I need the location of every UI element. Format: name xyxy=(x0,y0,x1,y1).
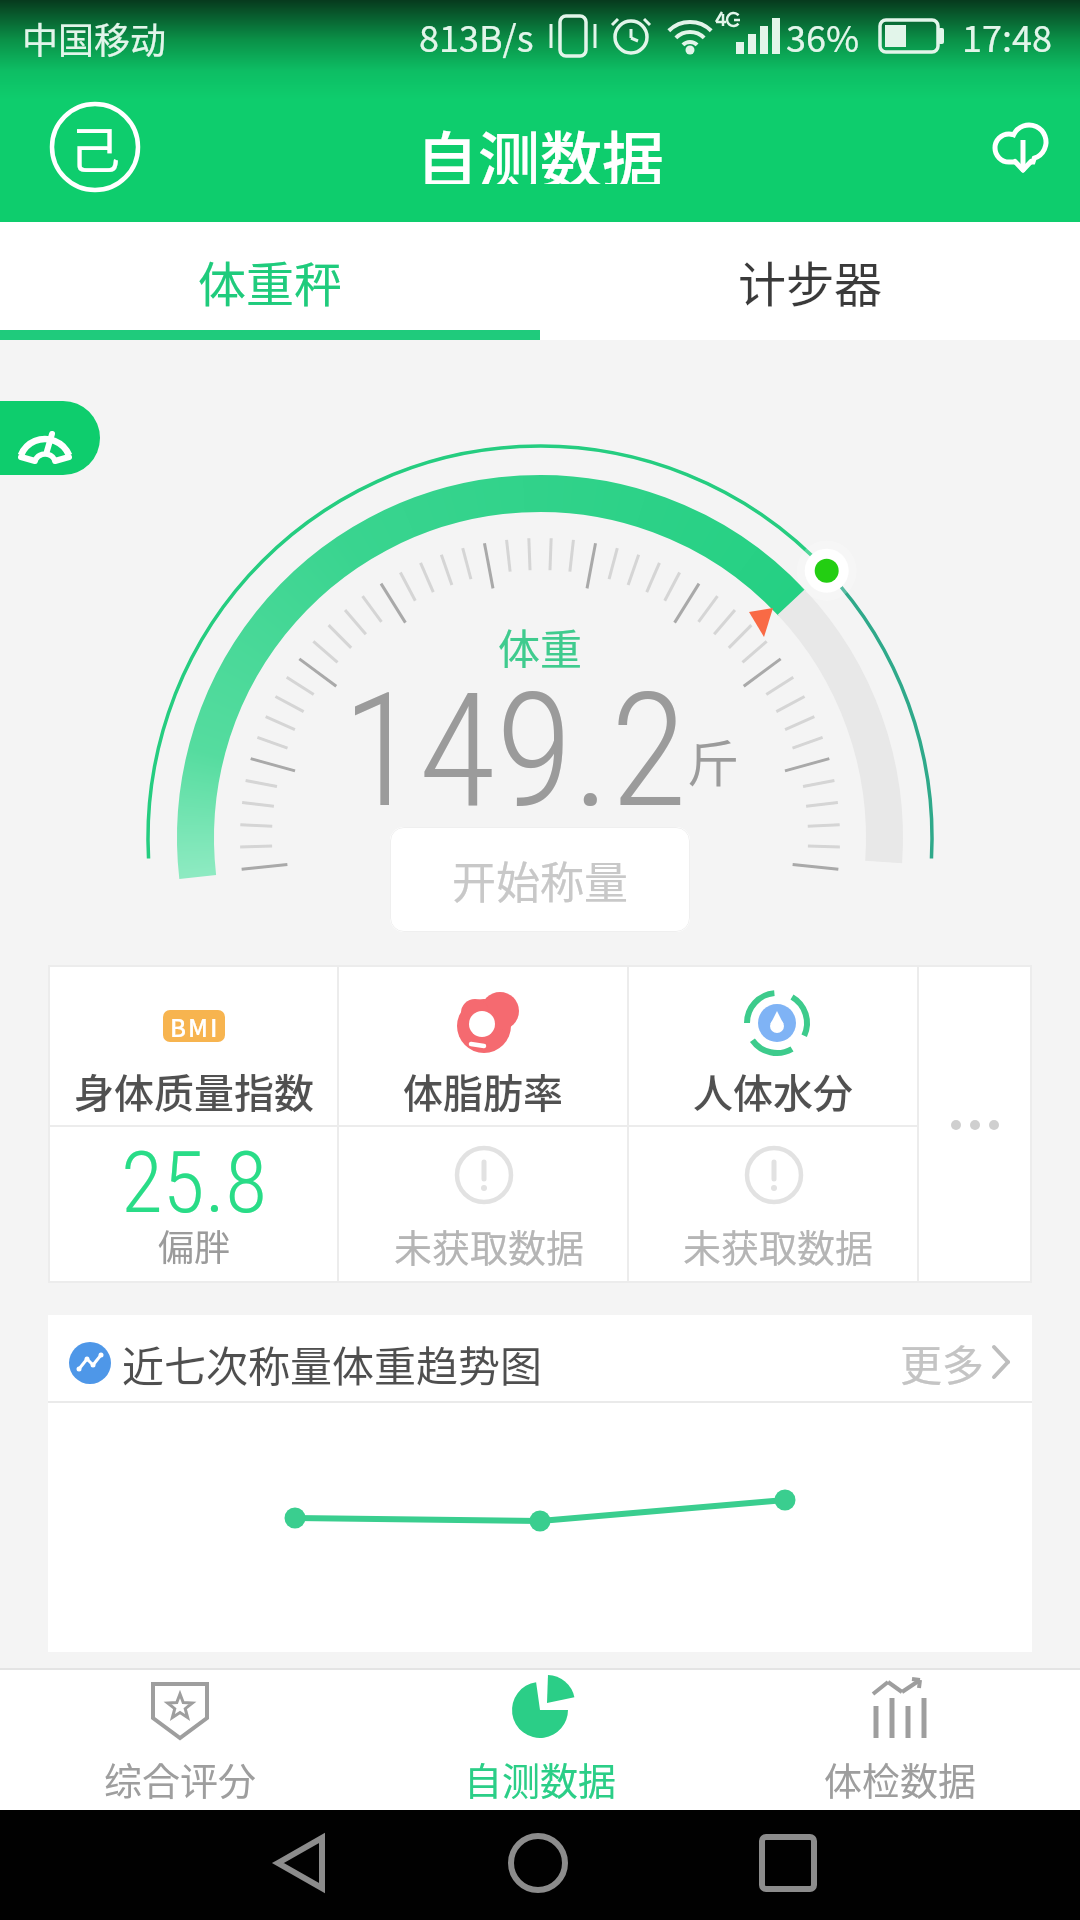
button[interactable] xyxy=(420,1668,660,1810)
staticText: 36% xyxy=(786,10,860,62)
button[interactable]: 计步器 xyxy=(540,222,1080,340)
staticText: 偏胖 xyxy=(158,1219,231,1271)
staticText: 自测数据 xyxy=(464,1751,617,1806)
staticText: 自测数据 xyxy=(416,112,665,184)
button[interactable] xyxy=(460,1810,620,1920)
button[interactable] xyxy=(240,1810,400,1920)
button[interactable] xyxy=(985,110,1057,182)
staticText: 综合评分 xyxy=(104,1751,257,1806)
staticText: 体重秤 xyxy=(198,246,343,316)
button[interactable]: 体重秤 xyxy=(0,222,540,340)
button[interactable] xyxy=(700,1810,860,1920)
staticText: 更多 xyxy=(900,1332,985,1393)
staticText: 25.8 xyxy=(121,1132,268,1222)
staticText: 未获取数据 xyxy=(683,1218,874,1273)
staticText: 未获取数据 xyxy=(394,1218,585,1273)
staticText: 人体水分 xyxy=(693,1062,853,1120)
staticText: BMI xyxy=(170,1009,220,1044)
staticText: 中国移动 xyxy=(22,12,167,64)
staticText: 813B/s xyxy=(419,10,534,62)
button[interactable]: 近七次称量体重趋势图 xyxy=(48,1315,1032,1652)
staticText: 近七次称量体重趋势图 xyxy=(122,1333,543,1394)
staticText: 己 xyxy=(70,111,120,183)
staticText: 斤 xyxy=(688,724,738,796)
button[interactable] xyxy=(60,1668,300,1810)
button[interactable] xyxy=(780,1668,1020,1810)
staticText: 体检数据 xyxy=(824,1751,977,1806)
staticText: 17:48 xyxy=(962,10,1052,62)
staticText: 身体质量指数 xyxy=(74,1062,314,1120)
staticText: 计步器 xyxy=(738,246,883,316)
staticText: 开始称量 xyxy=(452,848,628,912)
button[interactable]: 开始称量 xyxy=(390,827,690,932)
button[interactable]: 己 xyxy=(51,103,139,191)
staticText: 体重 xyxy=(498,616,583,668)
staticText: 149.2 xyxy=(342,658,688,818)
button[interactable] xyxy=(0,401,100,475)
staticText: 体脂肪率 xyxy=(403,1062,563,1120)
